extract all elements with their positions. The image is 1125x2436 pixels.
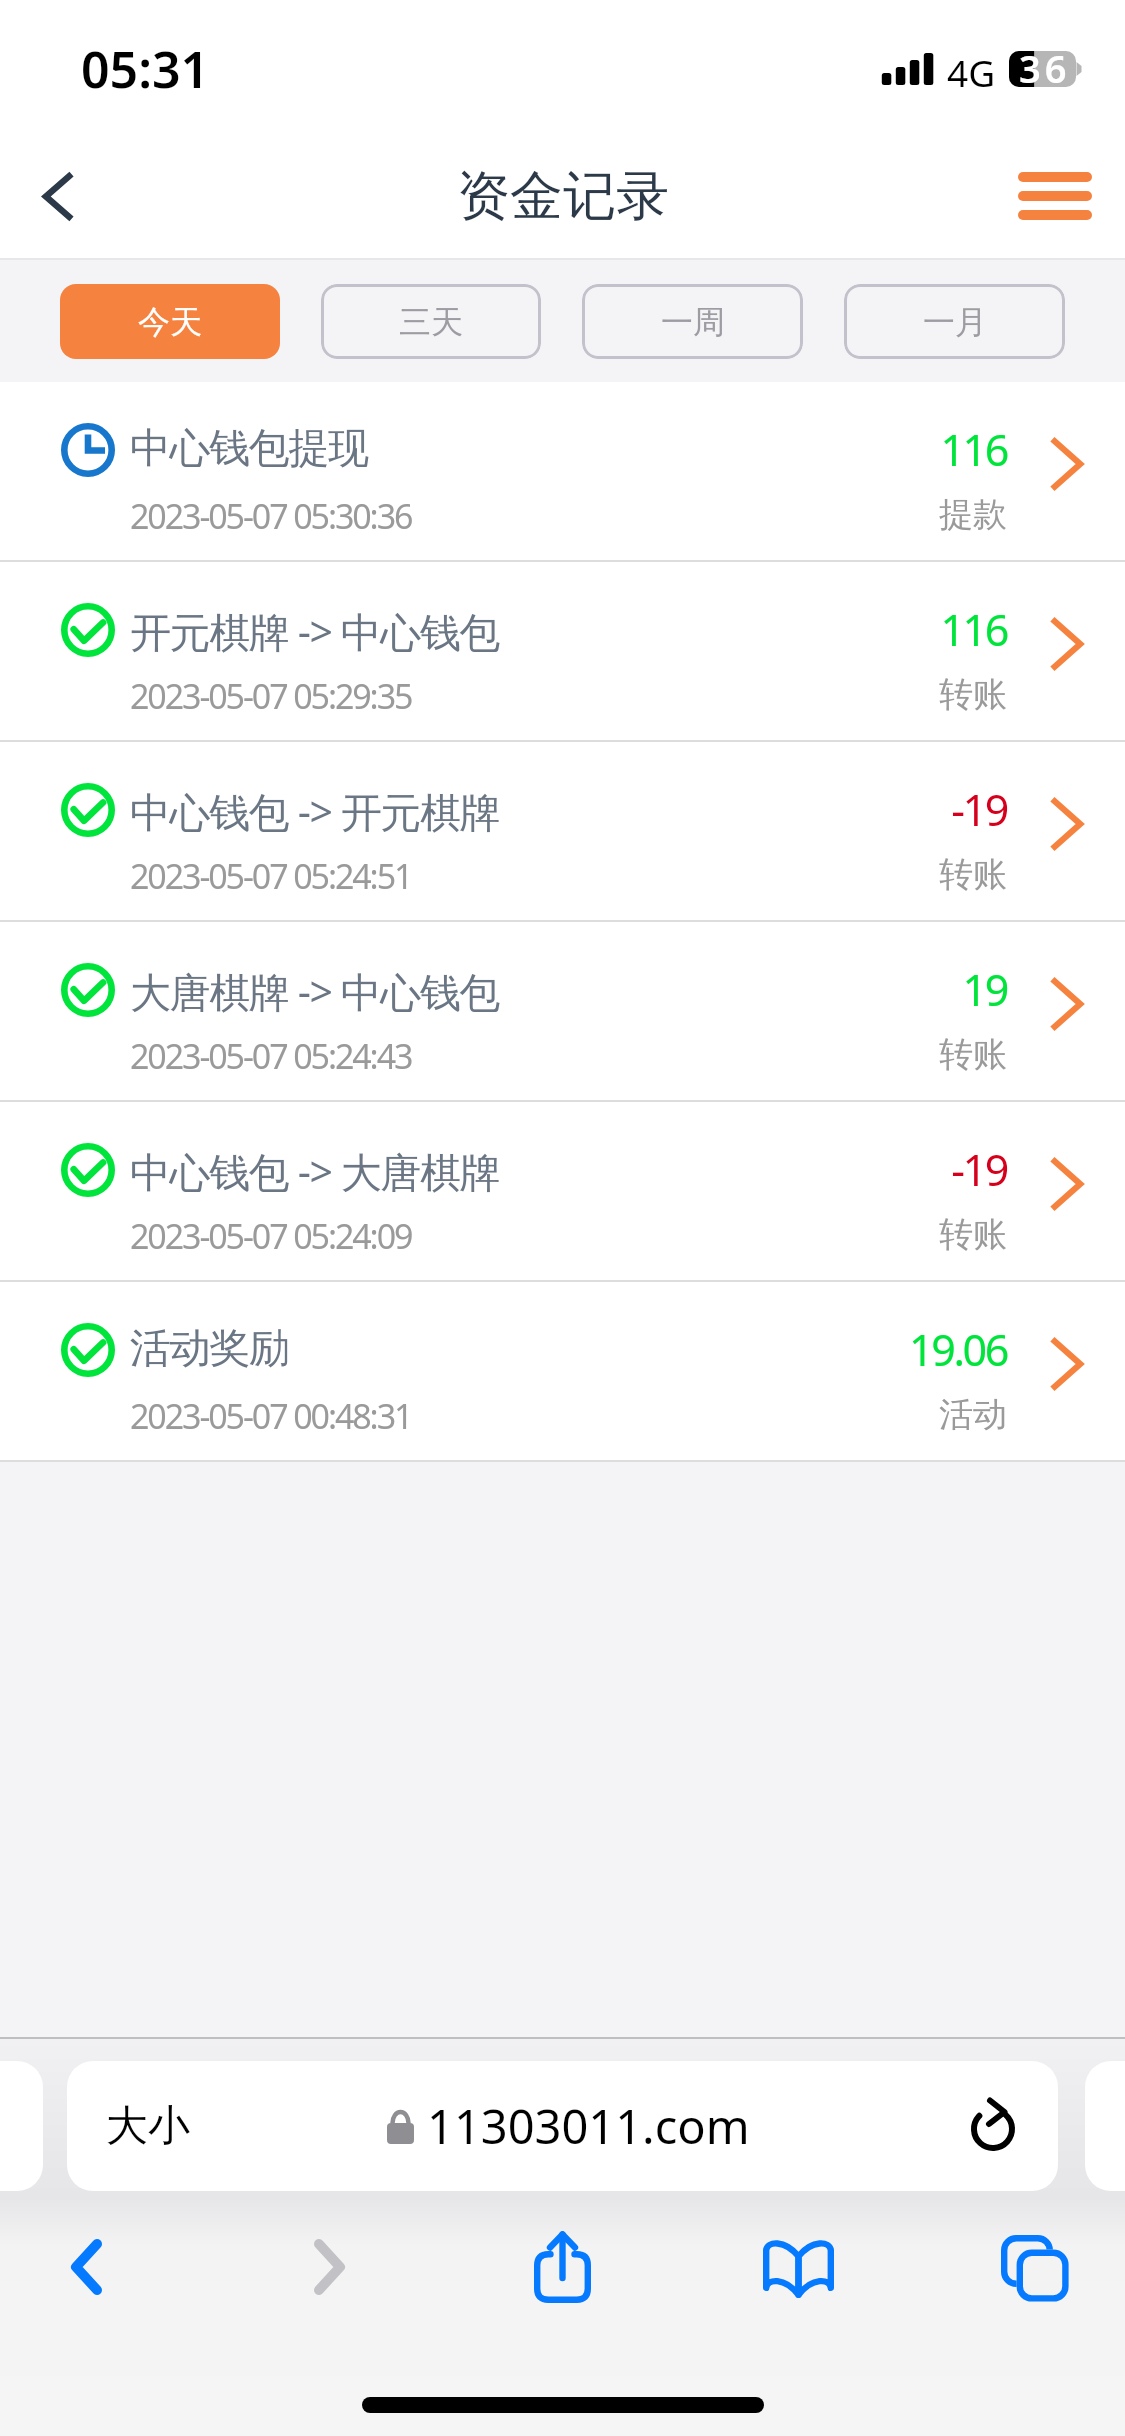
button[interactable]: Menu [985,132,1125,260]
staticText: 2023-05-07 05:30:36 [130,493,412,539]
staticText: 资金记录 [457,163,669,230]
button[interactable]: 活动奖励 [0,1282,1125,1460]
staticText: 转账 [939,673,1007,716]
button[interactable]: Share [502,2207,622,2327]
button[interactable]: Back [0,132,118,260]
staticText: 116 [940,600,1007,659]
staticText: 2023-05-07 05:24:51 [130,853,412,899]
staticText: 19 [962,960,1007,1019]
staticText: 今天 [138,302,202,342]
button[interactable]: 今天 [60,284,280,359]
button[interactable]: 三天 [321,284,541,359]
button[interactable]: Reload [971,2098,1019,2154]
button[interactable]: Bookmarks [738,2207,858,2327]
staticText: 转账 [939,1033,1007,1076]
staticText: 大小 [106,2100,190,2153]
staticText: -19 [951,780,1007,839]
staticText: 一周 [661,302,725,342]
staticText: 116 [940,420,1007,479]
staticText: 活动奖励 [130,1323,289,1375]
staticText: 中心钱包提现 [130,423,368,475]
staticText: 2023-05-07 05:29:35 [130,673,412,719]
button[interactable]: 一周 [582,284,803,359]
staticText: 活动 [939,1393,1007,1436]
staticText: 2023-05-07 05:24:09 [130,1213,412,1259]
staticText: 2023-05-07 00:48:31 [130,1393,412,1439]
staticText: 转账 [939,1213,1007,1256]
staticText: 中心钱包 -> 大唐棋牌 [130,1143,500,1199]
button[interactable]: Forward [269,2207,389,2327]
staticText: 提款 [939,493,1007,536]
button[interactable]: 大唐棋牌 -> 中心钱包 [0,922,1125,1100]
staticText: 中心钱包 -> 开元棋牌 [130,783,500,839]
staticText: 11303011.com [427,2094,750,2158]
staticText: 转账 [939,853,1007,896]
button[interactable]: 中心钱包 -> 开元棋牌 [0,742,1125,920]
button[interactable]: 开元棋牌 -> 中心钱包 [0,562,1125,740]
staticText: 三天 [399,302,463,342]
button[interactable]: 一月 [844,284,1065,359]
staticText: 大唐棋牌 -> 中心钱包 [130,963,500,1019]
button[interactable]: Tabs [974,2207,1094,2327]
staticText: 19.06 [909,1320,1007,1379]
staticText: 4G [947,47,996,97]
button[interactable]: 中心钱包提现 [0,382,1125,560]
staticText: 36 [1019,42,1071,94]
button[interactable]: 大小 [67,2061,1058,2191]
staticText: 开元棋牌 -> 中心钱包 [130,603,500,659]
staticText: 2023-05-07 05:24:43 [130,1033,412,1079]
staticText: 05:31 [81,35,210,103]
button[interactable]: Back [26,2207,146,2327]
staticText: 一月 [923,302,987,342]
staticText: -19 [951,1140,1007,1199]
button[interactable]: 中心钱包 -> 大唐棋牌 [0,1102,1125,1280]
